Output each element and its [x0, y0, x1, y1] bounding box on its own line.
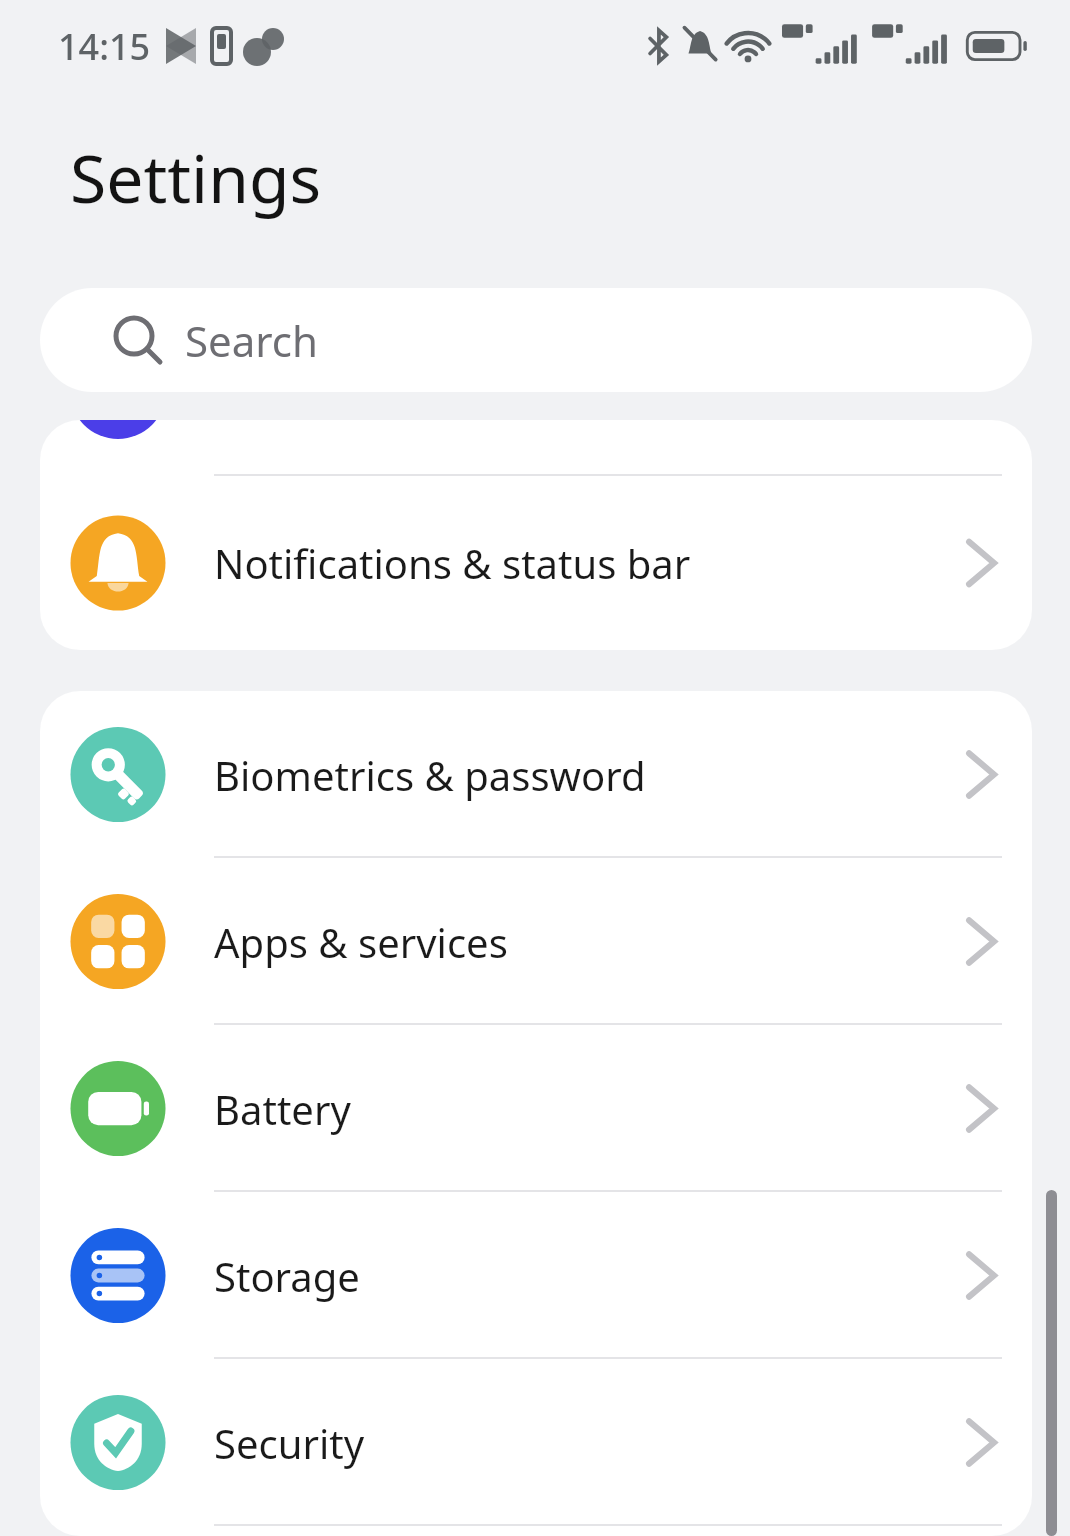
button[interactable]: Security — [40, 1359, 1032, 1526]
staticText: Security — [214, 1416, 365, 1470]
button[interactable]: Storage — [40, 1192, 1032, 1359]
staticText: Biometrics & password — [214, 748, 646, 802]
staticText: Storage — [214, 1249, 360, 1303]
button[interactable]: Apps & services — [40, 858, 1032, 1025]
staticText: 14:15 — [58, 22, 151, 71]
staticText: Search — [185, 312, 318, 369]
staticText: Notifications & status bar — [214, 536, 691, 590]
staticText: Battery — [214, 1082, 351, 1136]
button[interactable]: Notifications & status bar — [40, 476, 1032, 650]
button[interactable]: Search — [40, 288, 1032, 392]
staticText: Apps & services — [214, 915, 508, 969]
button[interactable]: Battery — [40, 1025, 1032, 1192]
staticText: Settings — [70, 132, 322, 222]
button[interactable]: Biometrics & password — [40, 691, 1032, 858]
